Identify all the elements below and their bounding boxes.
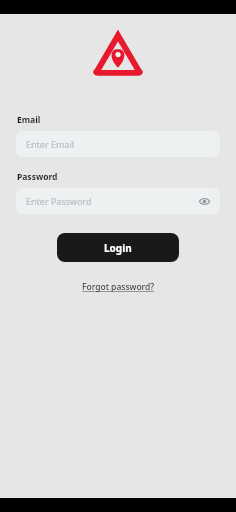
staticText: Login [104, 241, 132, 255]
button[interactable]: Show password [197, 194, 211, 208]
staticText: Password [17, 171, 58, 183]
button[interactable]: Forgot password? [78, 279, 159, 295]
button[interactable]: Enter Email [16, 131, 220, 157]
button[interactable]: Login [57, 233, 179, 262]
staticText: Forgot password? [82, 281, 155, 293]
staticText: Enter Email [26, 138, 75, 150]
staticText: Enter Password [26, 195, 92, 207]
staticText: Email [17, 114, 41, 126]
button[interactable]: Enter Password [16, 188, 220, 214]
